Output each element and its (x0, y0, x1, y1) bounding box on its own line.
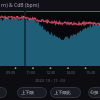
staticText: 11:00 (26, 70, 35, 75)
staticText: 15:30 (86, 70, 95, 75)
button[interactable]: Next metric (88, 87, 100, 98)
staticText: 心拍 (90, 90, 99, 95)
staticText: 09:30 (6, 70, 15, 75)
button[interactable]: Heart rate chart (0, 11, 100, 66)
staticText: 12:30 (46, 70, 55, 75)
staticText: 上下限比 (%) (54, 90, 77, 96)
button[interactable]: Previous metric (0, 87, 7, 98)
button[interactable]: 上下限 (cm) (17, 87, 47, 98)
staticText: rn) & CdB (bpm) (1, 2, 39, 9)
staticText: 上下限 (cm) (21, 90, 43, 96)
button[interactable]: rn) & CdB (bpm) (0, 0, 100, 11)
staticText: 2023 10 : 11 : 03 (35, 78, 65, 83)
staticText: 14:00 (66, 70, 75, 75)
button[interactable]: 上下限比 (%) (50, 87, 81, 98)
